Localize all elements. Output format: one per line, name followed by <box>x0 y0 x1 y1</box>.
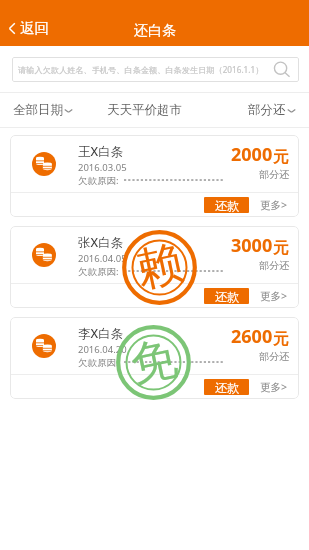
staticText: 3000 <box>231 233 273 258</box>
button[interactable]: 请输入欠款人姓名、手机号、白条金额、白条发生日期（2016.1.1） <box>12 57 299 82</box>
staticText: 赖 <box>131 234 188 300</box>
staticText: 欠款原因: <box>78 356 119 369</box>
staticText: 全部日期 <box>13 102 63 118</box>
staticText: 李X白条 <box>78 325 124 342</box>
button[interactable]: 更多> <box>260 289 288 303</box>
staticText: 2016.03.05 <box>78 161 127 174</box>
staticText: 请输入欠款人姓名、手机号、白条金额、白条发生日期（2016.1.1） <box>18 64 273 75</box>
staticText: 天天平价超市 <box>107 102 182 118</box>
staticText: 张X白条 <box>78 234 124 251</box>
staticText: 欠款原因: <box>78 265 119 278</box>
button[interactable]: 更多> <box>260 380 288 394</box>
staticText: 2016.04.05 <box>78 252 127 265</box>
staticText: 2600 <box>231 324 273 349</box>
other: Search <box>273 61 291 79</box>
staticText: 免 <box>125 329 182 395</box>
button[interactable]: 天天平价超市 <box>107 93 182 127</box>
staticText: 部分还 <box>248 102 286 118</box>
staticText: 王X白条 <box>78 143 124 160</box>
staticText: 还款 <box>215 198 239 213</box>
staticText: 2000 <box>231 142 273 167</box>
staticText: 返回 <box>20 19 49 37</box>
staticText: 元 <box>273 147 289 167</box>
button[interactable]: Back <box>0 14 59 42</box>
button[interactable]: 部分还 <box>248 93 296 127</box>
other: Back <box>8 22 16 35</box>
staticText: 还款 <box>215 380 239 395</box>
button[interactable]: 王X白条 <box>10 135 299 217</box>
staticText: 欠款原因: <box>78 174 119 187</box>
button[interactable]: 还款 <box>204 197 249 213</box>
button[interactable]: 李X白条 <box>10 317 299 399</box>
staticText: 更多> <box>260 289 288 303</box>
staticText: 部分还 <box>259 168 289 181</box>
staticText: 还白条 <box>134 22 176 40</box>
button[interactable]: 张X白条 <box>10 226 299 308</box>
button[interactable]: 还款 <box>204 379 249 395</box>
staticText: 部分还 <box>259 350 289 363</box>
button[interactable]: 全部日期 <box>13 93 73 127</box>
staticText: 还款 <box>215 289 239 304</box>
staticText: 部分还 <box>259 259 289 272</box>
staticText: 2016.04.20 <box>78 343 127 356</box>
staticText: 元 <box>273 329 289 349</box>
button[interactable]: 更多> <box>260 198 288 212</box>
staticText: 更多> <box>260 380 288 394</box>
staticText: 元 <box>273 238 289 258</box>
button[interactable]: 还款 <box>204 288 249 304</box>
staticText: 更多> <box>260 198 288 212</box>
